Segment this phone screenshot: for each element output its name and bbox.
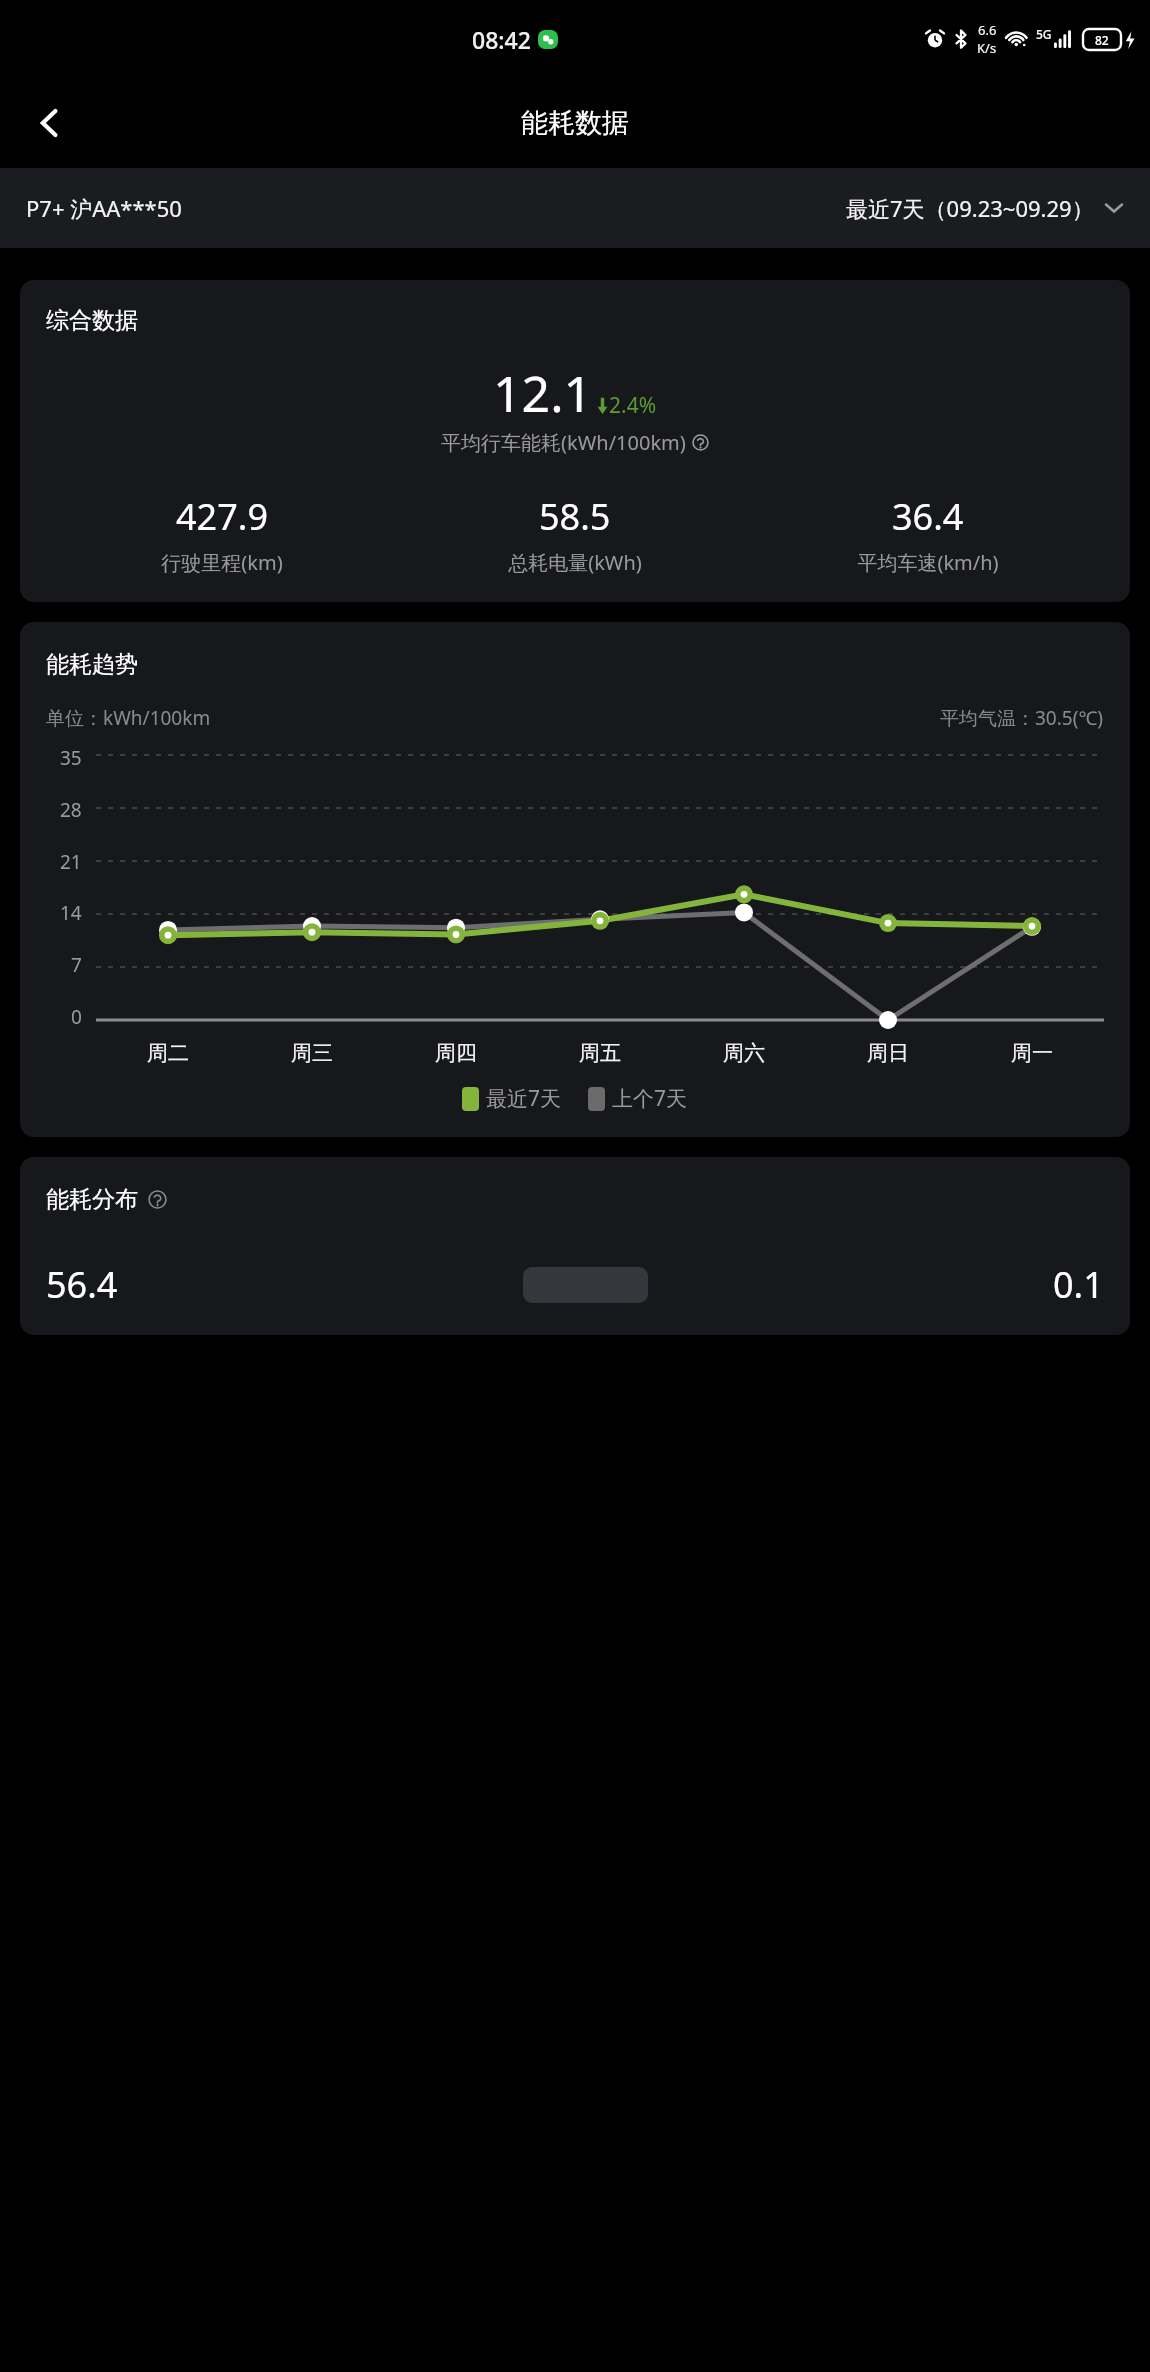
staticText: 平均气温：30.5(℃) (940, 705, 1104, 731)
staticText: 周二 (147, 1040, 189, 1066)
button[interactable]: 能耗趋势 (20, 622, 1130, 1137)
staticText: 周四 (435, 1040, 477, 1066)
staticText: 平均车速(km/h) (857, 549, 999, 576)
button[interactable]: P7+ 沪AA***50 (0, 193, 194, 223)
staticText: 周五 (579, 1040, 621, 1066)
staticText: 综合数据 (46, 306, 138, 335)
staticText: K/s (977, 39, 997, 57)
staticText: 427.9 (176, 492, 269, 541)
staticText: 周日 (867, 1040, 909, 1066)
staticText: 7 (71, 952, 82, 978)
staticText: 最近7天（09.23~09.29） (846, 193, 1094, 223)
button[interactable]: 能耗分布 (20, 1157, 1130, 1335)
staticText: 58.5 (539, 492, 611, 541)
button[interactable]: Back (22, 95, 78, 151)
staticText: 28 (60, 797, 82, 823)
staticText: 能耗分布 (46, 1185, 138, 1214)
staticText: P7+ 沪AA***50 (26, 193, 182, 223)
staticText: 14 (60, 900, 82, 926)
staticText: 平均行车能耗(kWh/100km) (441, 429, 686, 456)
staticText: 上个7天 (612, 1084, 688, 1113)
staticText: 08:42 (472, 24, 531, 55)
staticText: 82 (1095, 32, 1109, 48)
staticText: 最近7天 (486, 1084, 562, 1113)
staticText: 能耗数据 (521, 106, 629, 140)
button[interactable]: 最近7天（09.23~09.29） (846, 193, 1150, 223)
staticText: 6.6 (978, 21, 997, 39)
staticText: 行驶里程(km) (161, 549, 283, 576)
staticText: 36.4 (892, 492, 964, 541)
button[interactable]: 综合数据 (20, 280, 1130, 602)
staticText: 周六 (723, 1040, 765, 1066)
staticText: 0 (71, 1004, 82, 1030)
staticText: 21 (60, 849, 82, 875)
staticText: 56.4 (46, 1260, 118, 1309)
staticText: 周一 (1011, 1040, 1053, 1066)
staticText: 5G (1036, 26, 1052, 42)
staticText: 总耗电量(kWh) (508, 549, 642, 576)
staticText: 周三 (291, 1040, 333, 1066)
staticText: 单位：kWh/100km (46, 705, 211, 731)
staticText: 12.1 (493, 359, 593, 427)
staticText: 2.4% (609, 391, 657, 420)
staticText: 35 (60, 745, 82, 771)
staticText: 能耗趋势 (46, 650, 138, 679)
staticText: 0.1 (1053, 1260, 1104, 1309)
